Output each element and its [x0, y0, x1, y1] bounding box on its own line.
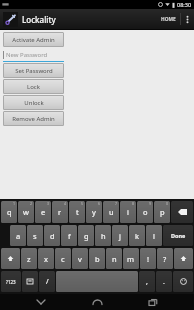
- staticText: b: [95, 254, 100, 264]
- button[interactable]: z: [21, 248, 37, 269]
- staticText: u: [109, 207, 114, 217]
- button[interactable]: Change input method: [22, 271, 38, 292]
- button[interactable]: Hide keyboard: [26, 294, 56, 310]
- button[interactable]: Set Password: [3, 63, 64, 78]
- button[interactable]: v: [72, 248, 88, 269]
- button[interactable]: 2: [18, 201, 34, 223]
- button[interactable]: 9: [137, 201, 153, 223]
- button[interactable]: Symbols: [1, 271, 21, 292]
- button[interactable]: c: [55, 248, 71, 269]
- staticText: Set Password: [15, 67, 53, 75]
- staticText: h: [101, 231, 106, 241]
- staticText: e: [41, 207, 46, 217]
- button[interactable]: ,: [139, 271, 155, 292]
- button[interactable]: b: [89, 248, 105, 269]
- staticText: Lockality: [22, 14, 56, 25]
- staticText: c: [61, 254, 65, 264]
- button[interactable]: Space: [56, 271, 138, 292]
- staticText: New Password: [6, 51, 48, 59]
- staticText: Lock: [27, 83, 40, 91]
- button[interactable]: a: [10, 225, 26, 246]
- staticText: 8: [132, 201, 135, 206]
- staticText: m: [127, 254, 135, 264]
- button[interactable]: 3: [35, 201, 51, 223]
- button[interactable]: Emoji: [173, 271, 193, 292]
- button[interactable]: More options: [181, 9, 194, 29]
- staticText: 3: [47, 201, 50, 206]
- staticText: g: [84, 231, 89, 241]
- button[interactable]: l: [146, 225, 162, 246]
- staticText: 7: [115, 201, 118, 206]
- button[interactable]: Remove Admin: [3, 111, 64, 126]
- staticText: !: [147, 254, 150, 264]
- button[interactable]: 6: [86, 201, 102, 223]
- button[interactable]: Activate Admin: [3, 32, 64, 47]
- staticText: ?123: [6, 279, 16, 285]
- button[interactable]: New Password: [3, 48, 64, 61]
- button[interactable]: Lock: [3, 79, 64, 94]
- staticText: 1: [13, 201, 16, 206]
- staticText: 0: [166, 201, 169, 206]
- button[interactable]: Done: [163, 225, 193, 246]
- staticText: HOME: [161, 16, 176, 23]
- staticText: ,: [146, 277, 148, 287]
- button[interactable]: h: [95, 225, 111, 246]
- staticText: f: [68, 231, 71, 241]
- staticText: p: [160, 207, 165, 217]
- staticText: 9: [149, 201, 152, 206]
- staticText: a: [16, 231, 21, 241]
- button[interactable]: s: [27, 225, 43, 246]
- button[interactable]: 4: [52, 201, 68, 223]
- staticText: y: [92, 207, 96, 217]
- button[interactable]: x: [38, 248, 54, 269]
- staticText: 08:30: [177, 1, 192, 8]
- staticText: l: [153, 231, 155, 241]
- button[interactable]: Shift: [174, 248, 193, 269]
- button[interactable]: !: [140, 248, 156, 269]
- staticText: 5: [81, 201, 84, 206]
- button[interactable]: Shift: [1, 248, 20, 269]
- staticText: n: [112, 254, 117, 264]
- staticText: o: [143, 207, 148, 217]
- button[interactable]: j: [112, 225, 128, 246]
- button[interactable]: /: [39, 271, 55, 292]
- staticText: i: [127, 207, 129, 217]
- button[interactable]: 1: [1, 201, 17, 223]
- button[interactable]: g: [78, 225, 94, 246]
- button[interactable]: d: [44, 225, 60, 246]
- staticText: 4: [64, 201, 67, 206]
- button[interactable]: 8: [120, 201, 136, 223]
- button[interactable]: .: [156, 271, 172, 292]
- button[interactable]: HOME: [157, 9, 180, 29]
- staticText: k: [135, 231, 140, 241]
- staticText: j: [119, 231, 121, 241]
- button[interactable]: k: [129, 225, 145, 246]
- staticText: /: [46, 277, 49, 287]
- button[interactable]: Unlock: [3, 95, 64, 110]
- staticText: Activate Admin: [12, 36, 55, 44]
- staticText: Remove Admin: [12, 115, 55, 123]
- button[interactable]: 5: [69, 201, 85, 223]
- staticText: q: [7, 207, 12, 217]
- staticText: 2: [30, 201, 33, 206]
- staticText: t: [76, 207, 79, 217]
- button[interactable]: 0: [154, 201, 170, 223]
- staticText: z: [27, 254, 31, 264]
- button[interactable]: 7: [103, 201, 119, 223]
- staticText: d: [50, 231, 55, 241]
- staticText: w: [23, 207, 29, 217]
- staticText: r: [58, 207, 62, 217]
- button[interactable]: ?: [157, 248, 173, 269]
- button[interactable]: Backspace: [171, 201, 193, 223]
- staticText: s: [33, 231, 37, 241]
- button[interactable]: Home: [82, 294, 112, 310]
- staticText: Unlock: [24, 99, 44, 107]
- button[interactable]: m: [123, 248, 139, 269]
- button[interactable]: Recent apps: [138, 294, 168, 310]
- button[interactable]: n: [106, 248, 122, 269]
- staticText: x: [44, 254, 48, 264]
- staticText: ?: [163, 254, 167, 264]
- button[interactable]: f: [61, 225, 77, 246]
- staticText: Done: [171, 232, 186, 239]
- staticText: v: [78, 254, 82, 264]
